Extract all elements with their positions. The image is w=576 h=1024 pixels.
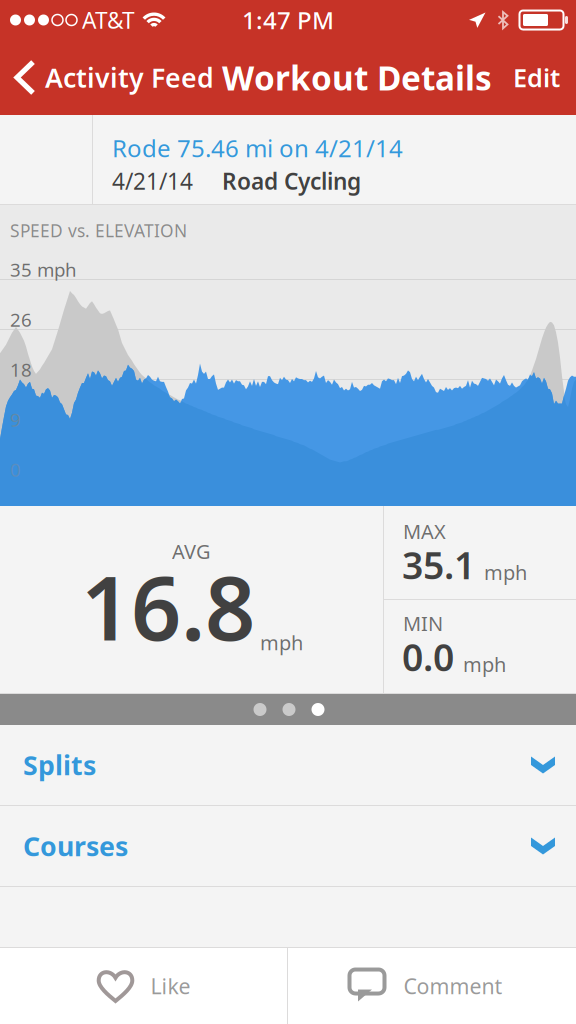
staticText: 4/21/14: [112, 166, 193, 196]
staticText: mph: [463, 651, 506, 678]
staticText: 1:47 PM: [242, 4, 334, 36]
staticText: Edit: [513, 61, 560, 94]
staticText: Like: [150, 972, 190, 1000]
staticText: SPEED vs. ELEVATION: [10, 219, 187, 242]
staticText: Activity Feed: [45, 60, 214, 95]
staticText: AT&T: [82, 5, 135, 35]
staticText: Road Cycling: [222, 166, 361, 196]
button[interactable]: Courses: [0, 806, 576, 886]
staticText: 16.8: [81, 548, 255, 665]
button[interactable]: Edit: [497, 40, 576, 115]
staticText: 0: [10, 457, 21, 482]
staticText: 9: [10, 407, 21, 432]
button[interactable]: Splits: [0, 725, 576, 805]
staticText: 35 mph: [10, 257, 77, 282]
staticText: Comment: [403, 972, 502, 1000]
staticText: 26: [10, 307, 32, 332]
button[interactable]: Activity Feed: [0, 40, 222, 115]
staticText: MIN: [403, 610, 443, 637]
staticText: Rode 75.46 mi on 4/21/14: [112, 132, 403, 164]
staticText: Courses: [23, 828, 128, 864]
button[interactable]: Comment: [287, 948, 575, 1024]
staticText: 18: [10, 357, 32, 382]
staticText: 0.0: [402, 632, 454, 682]
button[interactable]: Like: [0, 948, 287, 1024]
staticText: AVG: [172, 538, 211, 565]
staticText: Workout Details: [222, 55, 492, 100]
staticText: mph: [484, 559, 527, 586]
staticText: Splits: [23, 747, 96, 783]
staticText: MAX: [403, 518, 446, 545]
staticText: 35.1: [402, 540, 475, 590]
staticText: mph: [260, 629, 303, 656]
